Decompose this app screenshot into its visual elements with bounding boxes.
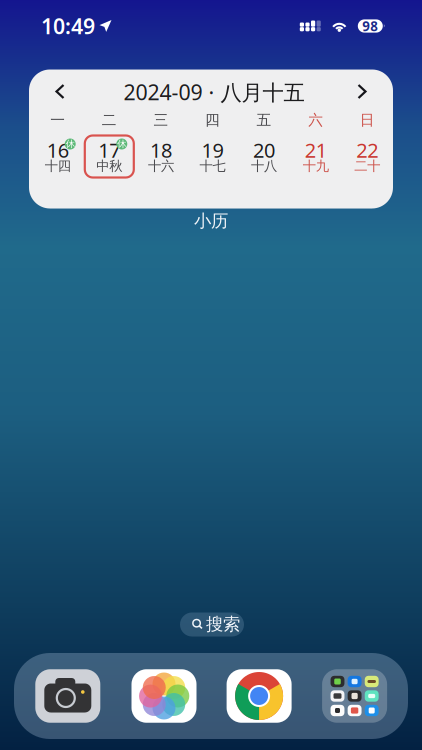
staticText: 16 — [47, 137, 69, 163]
staticText: 四 — [205, 111, 220, 129]
staticText: 休 — [66, 138, 75, 150]
staticText: 三 — [153, 111, 168, 129]
staticText: 18 — [150, 137, 172, 163]
staticText: 十六 — [148, 158, 174, 174]
staticText: 五 — [257, 111, 272, 129]
staticText: 一 — [50, 111, 65, 129]
staticText: 十九 — [303, 158, 329, 174]
staticText: 19 — [201, 137, 223, 163]
staticText: 10:49 — [41, 12, 95, 40]
button[interactable]: 搜索 — [180, 612, 244, 636]
button[interactable]: Camera — [35, 669, 100, 723]
button[interactable]: Chrome — [227, 669, 292, 723]
button[interactable]: Previous month — [41, 74, 79, 108]
staticText: 六 — [308, 111, 323, 129]
staticText: 日 — [360, 111, 375, 129]
staticText: 小历 — [194, 210, 228, 232]
button[interactable]: Apps folder — [322, 669, 387, 723]
button[interactable]: Next month — [343, 74, 381, 108]
staticText: 搜索 — [206, 614, 240, 635]
staticText: 20 — [253, 137, 275, 163]
staticText: 二十 — [354, 158, 380, 174]
staticText: 中秋 — [96, 158, 122, 174]
staticText: 休 — [117, 138, 126, 150]
staticText: 十七 — [199, 158, 225, 174]
staticText: 98 — [362, 17, 378, 35]
staticText: 二 — [102, 111, 117, 129]
button[interactable]: Photos — [131, 669, 196, 723]
staticText: 2024-09 · 八月十五 — [123, 78, 304, 106]
staticText: 十四 — [45, 158, 71, 174]
staticText: 17 — [98, 137, 120, 163]
staticText: 21 — [305, 137, 327, 163]
staticText: 22 — [356, 137, 378, 163]
staticText: 十八 — [251, 158, 277, 174]
